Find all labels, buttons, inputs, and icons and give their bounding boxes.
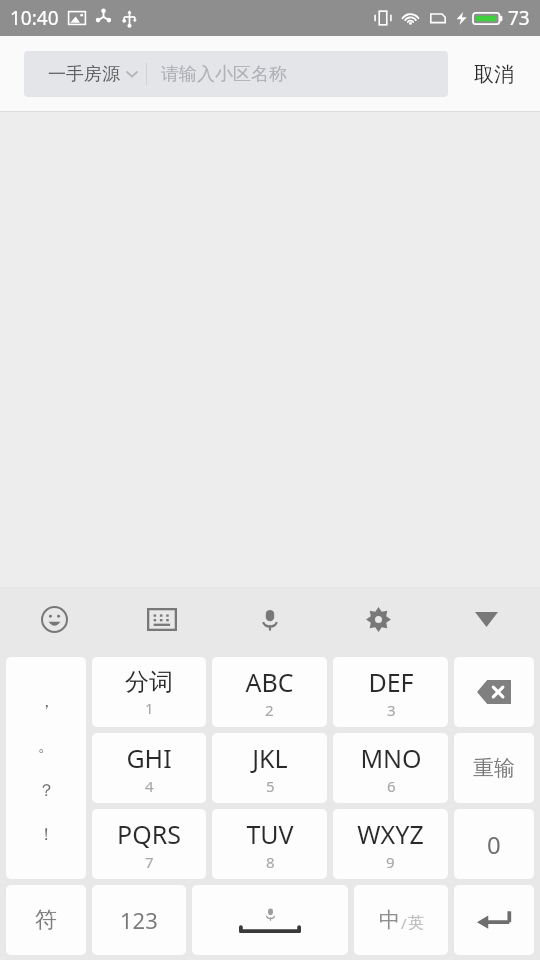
button[interactable]: PQRS <box>92 809 206 879</box>
staticText: DEF <box>368 665 414 699</box>
button[interactable]: TUV <box>212 809 327 879</box>
button[interactable]: Voice input <box>216 587 324 652</box>
staticText: 取消 <box>474 62 514 87</box>
button[interactable]: Enter <box>454 885 534 955</box>
button[interactable]: 分词 <box>92 657 206 727</box>
button[interactable]: Settings <box>324 587 432 652</box>
staticText: 9 <box>386 852 395 872</box>
button[interactable]: 取消 <box>448 36 540 112</box>
staticText: 10:40 <box>10 5 59 31</box>
staticText: MNO <box>360 741 422 775</box>
button[interactable]: 中 <box>354 885 448 955</box>
staticText: 5 <box>266 776 275 796</box>
staticText: 0 <box>487 828 501 861</box>
staticText: WXYZ <box>357 817 424 851</box>
button[interactable]: Backspace <box>454 657 534 727</box>
button[interactable]: MNO <box>333 733 448 803</box>
staticText: / <box>401 913 407 933</box>
button[interactable]: WXYZ <box>333 809 448 879</box>
button[interactable]: Space <box>192 885 348 955</box>
staticText: 3 <box>387 700 396 720</box>
staticText: 重输 <box>473 755 515 781</box>
staticText: 英 <box>408 913 424 933</box>
staticText: PQRS <box>117 817 181 851</box>
staticText: 7 <box>145 852 154 872</box>
staticText: 73 <box>508 5 530 31</box>
button[interactable]: JKL <box>212 733 327 803</box>
staticText: 2 <box>265 700 274 720</box>
button[interactable]: 请输入小区名称 <box>147 51 448 97</box>
button[interactable]: 符 <box>6 885 86 955</box>
button[interactable]: GHI <box>92 733 206 803</box>
button[interactable]: 0 <box>454 809 534 879</box>
staticText: TUV <box>246 817 294 851</box>
button[interactable]: ， <box>6 657 86 879</box>
staticText: ABC <box>245 665 294 699</box>
button[interactable]: ABC <box>212 657 327 727</box>
staticText: 中 <box>379 907 400 933</box>
staticText: 请输入小区名称 <box>161 63 287 86</box>
button[interactable]: 123 <box>92 885 186 955</box>
staticText: 6 <box>387 776 396 796</box>
staticText: 4 <box>145 776 154 796</box>
button[interactable]: Emoji <box>0 587 108 652</box>
staticText: GHI <box>126 741 172 775</box>
staticText: 。 <box>38 735 55 756</box>
button[interactable]: Keyboard layout <box>108 587 216 652</box>
staticText: 1 <box>145 698 154 718</box>
staticText: 分词 <box>125 667 173 697</box>
button[interactable]: Hide keyboard <box>432 587 540 652</box>
staticText: ， <box>38 691 55 712</box>
staticText: 一手房源 <box>48 63 120 86</box>
staticText: 123 <box>120 905 158 935</box>
button[interactable]: DEF <box>333 657 448 727</box>
staticText: ？ <box>38 780 55 801</box>
staticText: JKL <box>252 741 288 775</box>
staticText: 符 <box>35 906 57 934</box>
staticText: ！ <box>38 824 55 845</box>
staticText: 8 <box>266 852 275 872</box>
button[interactable]: 一手房源 <box>24 51 146 97</box>
button[interactable]: 重输 <box>454 733 534 803</box>
